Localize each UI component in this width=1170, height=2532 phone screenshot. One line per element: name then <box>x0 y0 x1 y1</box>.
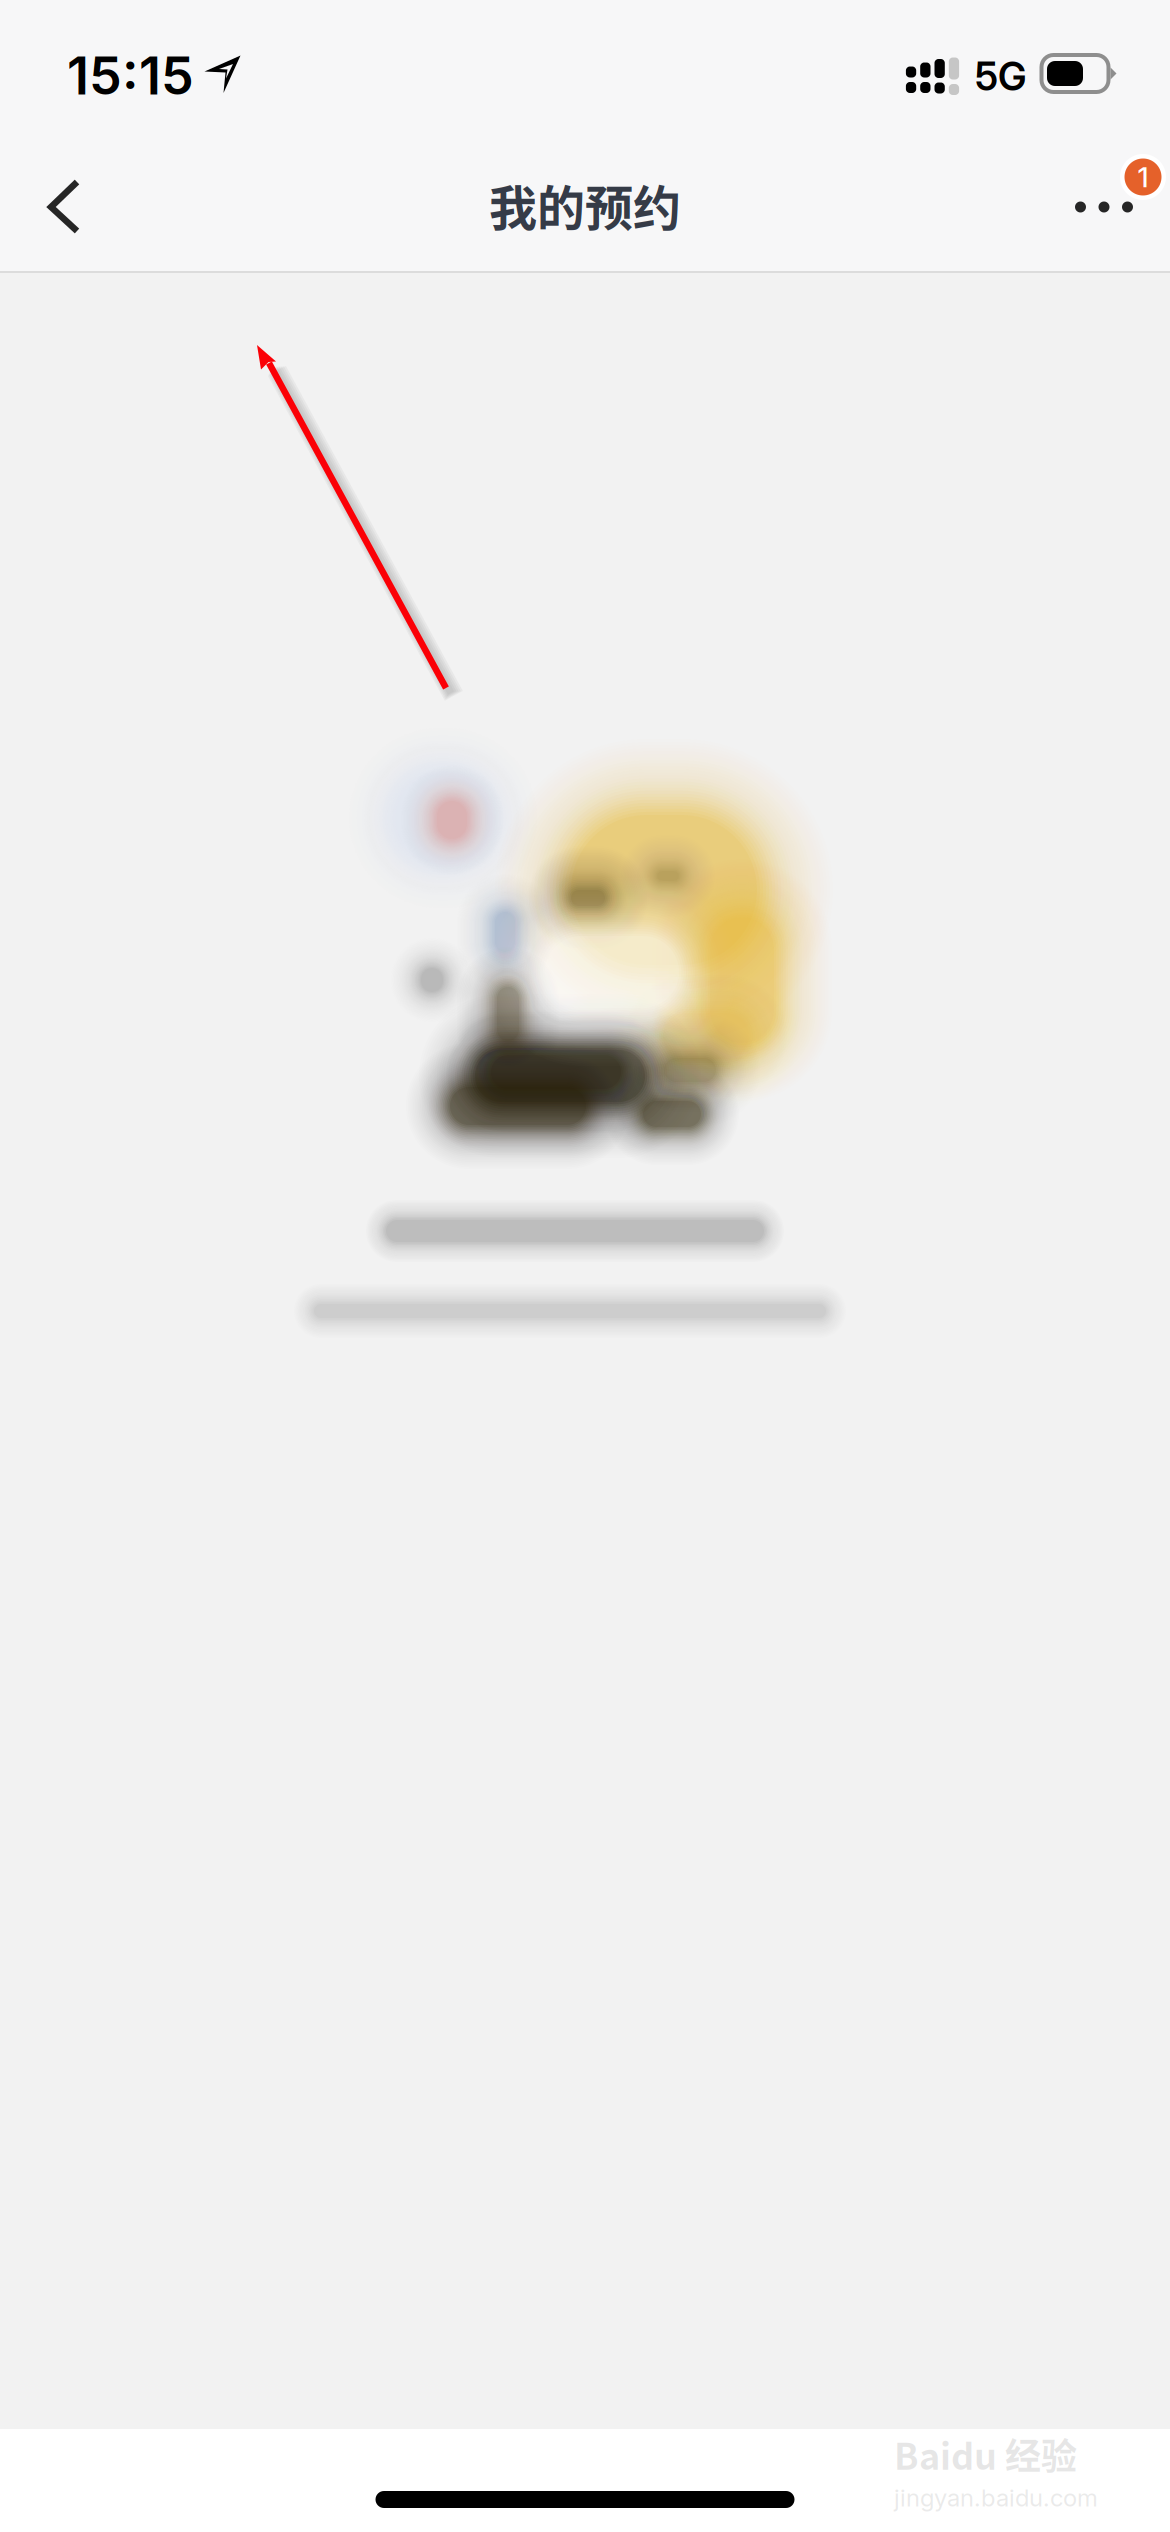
staticText: 15:15 <box>67 44 194 107</box>
staticText: jingyan.baidu.com <box>894 2483 1098 2512</box>
staticText: 1 <box>1137 160 1148 194</box>
button[interactable]: Back <box>8 150 120 271</box>
staticText: Baidu 经验 <box>894 2428 1077 2480</box>
staticText: 我的预约 <box>489 170 681 239</box>
button[interactable]: More options <box>1050 150 1170 271</box>
staticText: 5G <box>975 53 1026 100</box>
